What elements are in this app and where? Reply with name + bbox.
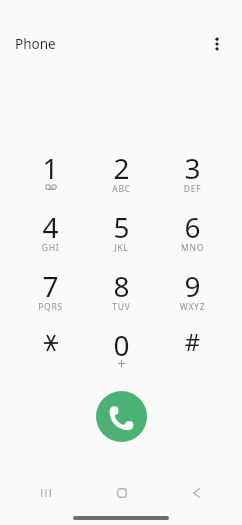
- staticText: 2: [86, 149, 157, 187]
- button[interactable]: pound: [157, 326, 228, 385]
- button[interactable]: 9: [157, 267, 228, 326]
- button[interactable]: 8: [86, 267, 157, 326]
- button[interactable]: Back: [186, 483, 206, 503]
- button[interactable]: 0: [86, 326, 157, 385]
- staticText: #: [157, 325, 228, 358]
- staticText: TUV: [86, 301, 157, 313]
- button[interactable]: 4: [15, 208, 86, 267]
- button[interactable]: 5: [86, 208, 157, 267]
- staticText: 4: [15, 208, 86, 246]
- button[interactable]: Call: [96, 391, 147, 442]
- staticText: 1: [15, 149, 86, 187]
- button[interactable]: 2: [86, 149, 157, 208]
- button[interactable]: 1: [15, 149, 86, 208]
- button[interactable]: More options: [205, 32, 229, 56]
- button[interactable]: 3: [157, 149, 228, 208]
- staticText: WXYZ: [157, 301, 228, 313]
- staticText: 6: [157, 208, 228, 246]
- button[interactable]: Home: [112, 483, 132, 503]
- button[interactable]: star: [15, 326, 86, 385]
- button[interactable]: 7: [15, 267, 86, 326]
- staticText: 0: [86, 326, 157, 364]
- staticText: DEF: [157, 183, 228, 195]
- button[interactable]: 6: [157, 208, 228, 267]
- staticText: 3: [157, 149, 228, 187]
- button[interactable]: Recents: [36, 483, 56, 503]
- staticText: GHI: [15, 242, 86, 254]
- staticText: Phone: [15, 35, 56, 53]
- staticText: 8: [86, 267, 157, 305]
- staticText: 5: [86, 208, 157, 246]
- staticText: MNO: [157, 242, 228, 254]
- staticText: PQRS: [15, 301, 86, 313]
- staticText: 7: [15, 267, 86, 305]
- staticText: ABC: [86, 183, 157, 195]
- staticText: JKL: [86, 242, 157, 254]
- staticText: 9: [157, 267, 228, 305]
